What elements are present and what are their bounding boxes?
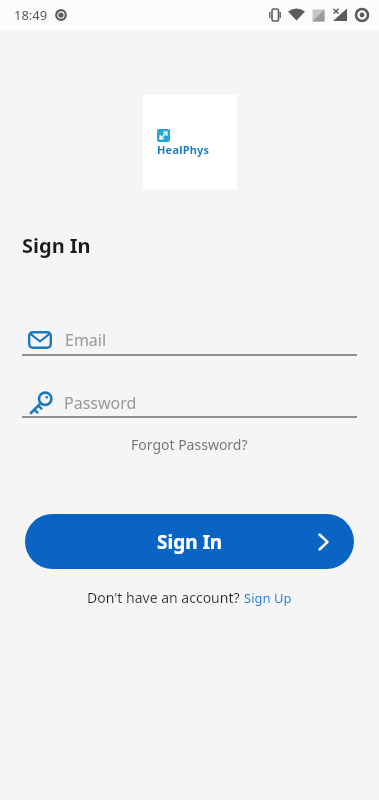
staticText: Email [65, 329, 107, 351]
button[interactable]: Email [0, 327, 379, 356]
button[interactable]: Sign In [25, 514, 354, 569]
staticText: Sign In [22, 232, 91, 259]
button[interactable]: Sign Up [244, 589, 292, 607]
button[interactable]: Forgot Password? [131, 435, 248, 454]
staticText: Password [64, 392, 137, 414]
button[interactable]: Password [0, 390, 379, 418]
staticText: HealPhys [157, 142, 210, 157]
staticText: Don't have an account? [87, 588, 240, 607]
staticText: Sign In [157, 529, 223, 555]
staticText: 18:49 [14, 6, 48, 24]
